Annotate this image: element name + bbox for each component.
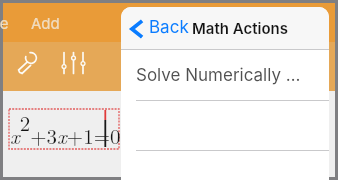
button[interactable]: Add: [25, 8, 66, 38]
staticText: Add: [31, 14, 60, 32]
button[interactable]: Solve Numerically …: [121, 50, 329, 101]
button[interactable]: Back: [130, 18, 188, 39]
button[interactable]: [9, 109, 119, 149]
button[interactable]: Tools: [16, 49, 39, 75]
button[interactable]: [121, 101, 329, 151]
button[interactable]: Adjust settings: [61, 51, 87, 75]
staticText: le: [0, 14, 9, 32]
staticText: Math Actions: [192, 19, 288, 37]
staticText: x2+3x+1=0: [10, 107, 121, 150]
staticText: Solve Numerically …: [136, 65, 301, 86]
staticText: Back: [149, 17, 189, 38]
